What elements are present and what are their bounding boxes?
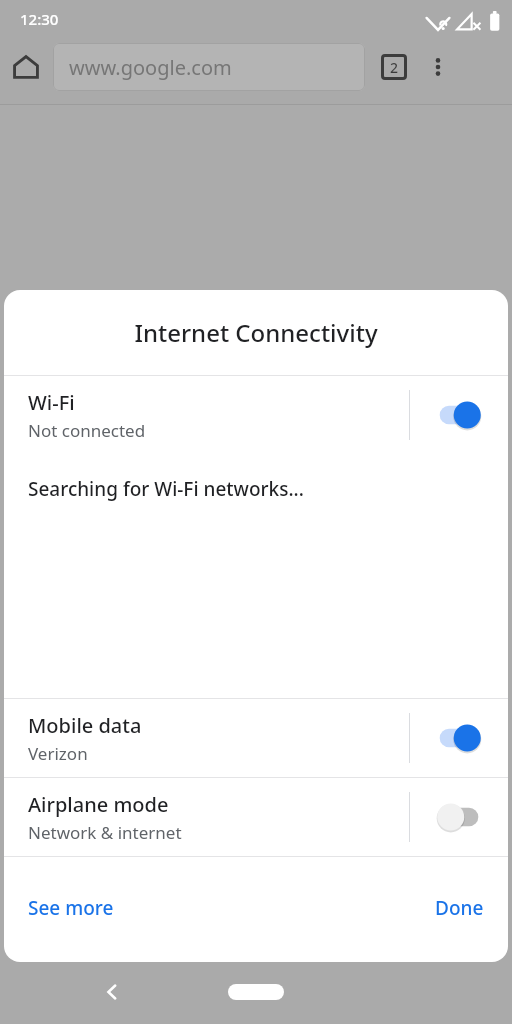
button[interactable]: Airplane mode toggle xyxy=(410,778,508,856)
staticText: Not connected xyxy=(28,419,146,442)
staticText: 12:30 xyxy=(20,9,59,29)
button[interactable]: Back xyxy=(88,968,136,1016)
staticText: Network & internet xyxy=(28,821,182,844)
staticText: Done xyxy=(435,895,484,921)
button[interactable]: Mobile data xyxy=(4,699,508,777)
staticText: See more xyxy=(28,895,114,921)
staticText: Verizon xyxy=(28,742,88,765)
button[interactable]: www.google.com xyxy=(53,43,365,91)
staticText: Mobile data xyxy=(28,712,142,739)
staticText: Airplane mode xyxy=(28,791,169,818)
button[interactable]: Wi-Fi toggle xyxy=(410,376,508,454)
staticText: www.google.com xyxy=(69,54,232,81)
staticText: Searching for Wi-Fi networks... xyxy=(28,476,304,502)
button[interactable]: More options xyxy=(416,45,460,89)
button[interactable]: Airplane mode xyxy=(4,778,508,856)
button[interactable]: See more xyxy=(18,885,124,931)
staticText: Internet Connectivity xyxy=(134,316,378,349)
button[interactable]: Home xyxy=(0,41,52,93)
button[interactable]: Open tabs, 2 tabs xyxy=(372,45,416,89)
button[interactable]: Wi-Fi xyxy=(4,376,508,454)
staticText: Wi-Fi xyxy=(28,389,75,416)
button[interactable]: Mobile data toggle xyxy=(410,699,508,777)
button[interactable]: Home xyxy=(228,984,284,1000)
staticText: 2 xyxy=(390,58,399,77)
button[interactable]: Done xyxy=(425,885,494,931)
